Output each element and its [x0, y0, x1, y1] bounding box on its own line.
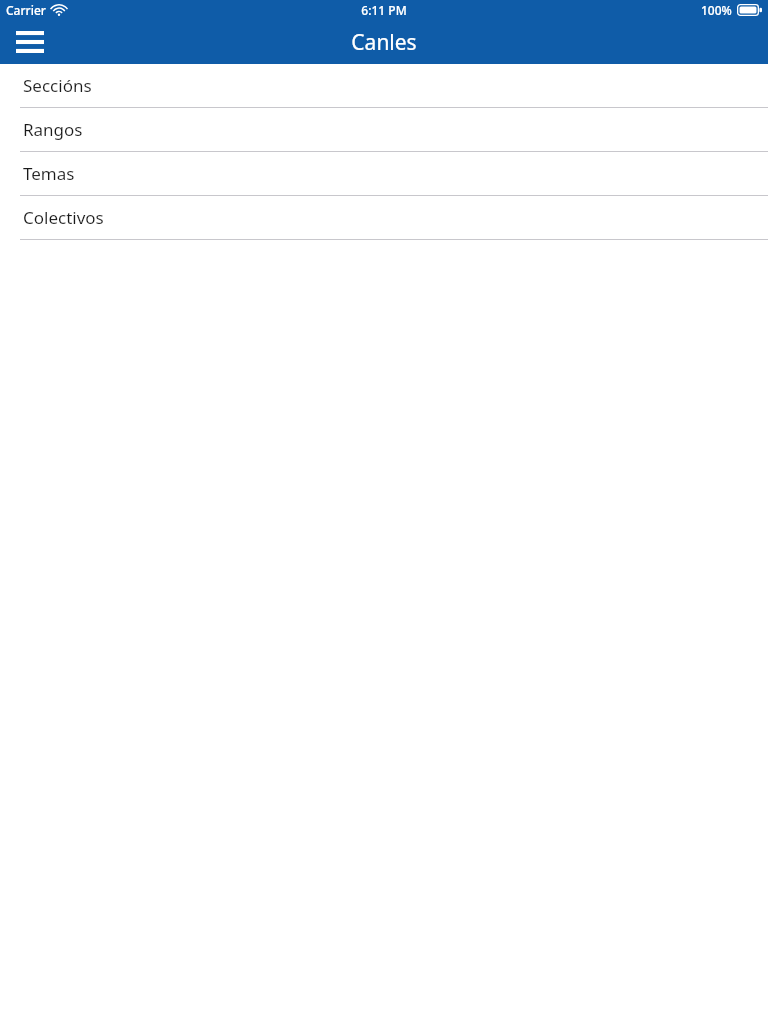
staticText: Rangos — [23, 118, 83, 141]
staticText: 6:11 PM — [361, 2, 407, 18]
staticText: 100% — [701, 2, 732, 18]
button[interactable]: Temas — [0, 152, 768, 196]
staticText: Carrier — [6, 2, 46, 18]
button[interactable]: Menu — [8, 20, 52, 64]
button[interactable]: Colectivos — [0, 196, 768, 240]
button[interactable]: Seccións — [0, 64, 768, 108]
button[interactable]: Rangos — [0, 108, 768, 152]
staticText: Seccións — [23, 74, 92, 97]
staticText: Colectivos — [23, 206, 104, 229]
staticText: Canles — [351, 28, 417, 57]
staticText: Temas — [23, 162, 75, 185]
